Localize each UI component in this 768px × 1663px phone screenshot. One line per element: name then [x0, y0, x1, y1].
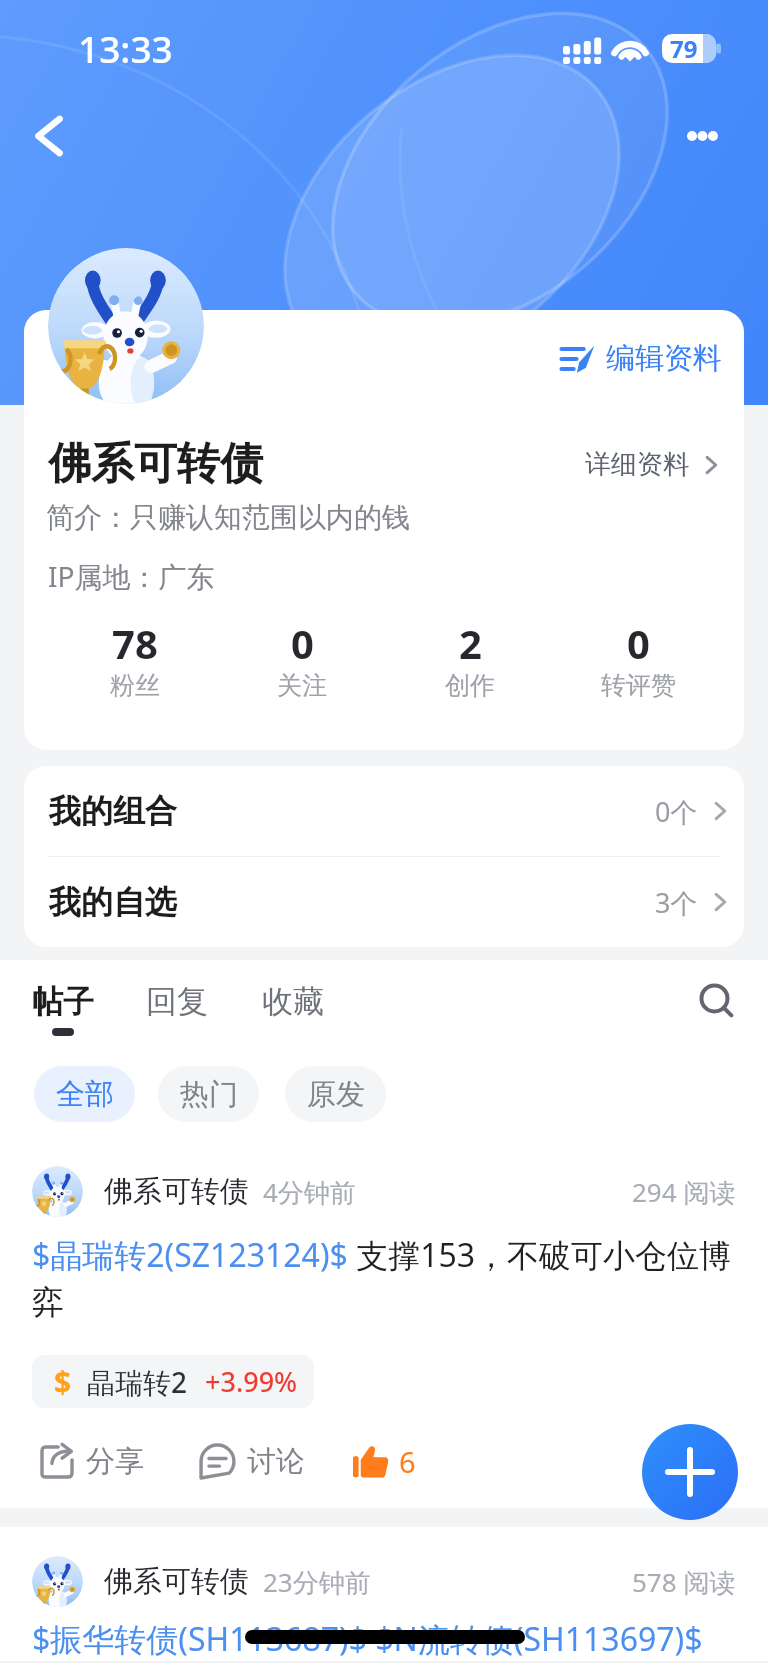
staticText: 我的组合 — [49, 791, 177, 831]
staticText: IP属地：广东 — [48, 557, 215, 595]
staticText: 0 — [291, 616, 314, 670]
button[interactable]: Create post — [642, 1424, 738, 1520]
button[interactable]: 帖子 — [32, 982, 94, 1036]
button[interactable]: 讨论 — [200, 1443, 305, 1480]
button[interactable]: 佛系可转债 — [0, 1527, 768, 1661]
button[interactable]: 收藏 — [262, 982, 324, 1021]
staticText: 2 — [459, 616, 482, 670]
staticText: 热门 — [180, 1076, 238, 1113]
button[interactable]: 6 — [353, 1442, 416, 1481]
staticText: 转评赞 — [601, 670, 676, 701]
staticText: 帖子 — [32, 982, 94, 1021]
button[interactable]: 原发 — [285, 1066, 386, 1122]
staticText: 讨论 — [247, 1443, 305, 1480]
button[interactable]: 全部 — [34, 1066, 135, 1122]
button[interactable]: Profile avatar — [48, 248, 204, 404]
button[interactable]: 2 — [386, 616, 554, 701]
staticText: 0 — [627, 616, 650, 670]
button[interactable]: Back — [11, 98, 87, 174]
staticText: 分享 — [86, 1443, 144, 1480]
staticText: 我的自选 — [49, 882, 177, 922]
staticText: 佛系可转债 — [48, 437, 263, 491]
staticText: 佛系可转债 — [104, 1563, 249, 1600]
button[interactable]: 佛系可转债 — [0, 1148, 768, 1508]
staticText: 粉丝 — [110, 670, 160, 701]
button[interactable]: 分享 — [41, 1443, 144, 1480]
button[interactable]: 我的自选 — [24, 857, 744, 947]
staticText: 回复 — [146, 982, 208, 1021]
button[interactable]: More options — [664, 98, 740, 174]
staticText: 晶瑞转2 — [87, 1363, 188, 1401]
staticText: $ — [54, 1361, 72, 1402]
staticText: 佛系可转债 — [104, 1173, 249, 1210]
button[interactable]: 详细资料 — [585, 448, 723, 481]
staticText: 4分钟前 — [263, 1174, 356, 1210]
button[interactable]: 热门 — [158, 1066, 259, 1122]
staticText: +3.99% — [205, 1363, 298, 1400]
staticText: 294 阅读 — [632, 1174, 736, 1210]
staticText: 23分钟前 — [263, 1564, 371, 1600]
button[interactable]: 0 — [554, 616, 722, 701]
staticText: 3个 — [655, 884, 698, 921]
staticText: 6 — [399, 1442, 416, 1481]
staticText: 简介：只赚认知范围以内的钱 — [46, 500, 410, 535]
staticText: 详细资料 — [585, 448, 689, 481]
button[interactable]: $ — [32, 1355, 314, 1408]
staticText: 原发 — [307, 1076, 365, 1113]
staticText: 全部 — [56, 1076, 114, 1113]
button[interactable]: 78 — [51, 616, 218, 701]
button[interactable]: 编辑资料 — [560, 340, 722, 377]
staticText: 78 — [112, 616, 158, 670]
button[interactable]: 回复 — [146, 982, 208, 1021]
staticText: 13:33 — [78, 23, 173, 73]
staticText: $晶瑞转2(SZ123124)$ 支撑153，不破可小仓位博弈 — [32, 1233, 736, 1323]
staticText: 收藏 — [262, 982, 324, 1021]
staticText: 关注 — [277, 670, 327, 701]
button[interactable]: 我的组合 — [24, 766, 744, 856]
staticText: 578 阅读 — [632, 1564, 736, 1600]
staticText: 编辑资料 — [606, 340, 722, 377]
staticText: 0个 — [655, 793, 698, 830]
staticText: 创作 — [445, 670, 495, 701]
staticText: $振华转债(SH113687)$ $N流转债(SH113697)$ — [32, 1617, 703, 1661]
staticText: 79 — [670, 32, 698, 65]
button[interactable]: Search — [694, 978, 742, 1026]
button[interactable]: 0 — [218, 616, 386, 701]
